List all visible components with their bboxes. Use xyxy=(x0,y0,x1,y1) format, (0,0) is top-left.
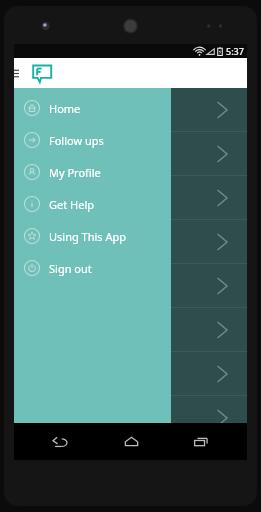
staticText: Home xyxy=(49,101,81,116)
button[interactable] xyxy=(14,352,247,396)
button[interactable] xyxy=(14,132,247,176)
button[interactable]: Open navigation drawer xyxy=(14,58,28,88)
button[interactable]: Sign out xyxy=(14,252,171,284)
button[interactable]: Home xyxy=(14,92,171,124)
button[interactable] xyxy=(14,396,247,440)
staticText: My Profile xyxy=(49,165,101,180)
button[interactable] xyxy=(14,220,247,264)
button[interactable] xyxy=(14,308,247,352)
button[interactable]: Recent apps xyxy=(176,423,226,460)
staticText: Sign out xyxy=(49,261,92,276)
button[interactable] xyxy=(14,88,247,132)
staticText: Get Help xyxy=(49,197,95,212)
button[interactable]: App logo xyxy=(31,62,53,84)
button[interactable]: Home xyxy=(106,423,156,460)
staticText: Using This App xyxy=(49,229,127,244)
button[interactable]: Get Help xyxy=(14,188,171,220)
button[interactable]: Back xyxy=(35,423,85,460)
button[interactable]: Follow ups xyxy=(14,124,171,156)
staticText: Follow ups xyxy=(49,133,104,148)
button[interactable] xyxy=(14,264,247,308)
button[interactable] xyxy=(14,176,247,220)
button[interactable]: Using This App xyxy=(14,220,171,252)
button[interactable]: My Profile xyxy=(14,156,171,188)
staticText: 5:37 xyxy=(226,45,244,57)
